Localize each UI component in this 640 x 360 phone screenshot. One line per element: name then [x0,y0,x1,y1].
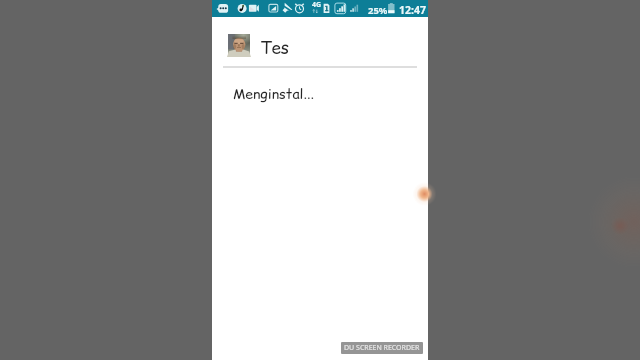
staticText: 4G [312,0,322,10]
button[interactable]: Profile photo [228,33,428,57]
staticText: DU SCREEN RECORDER [344,343,420,353]
staticText: Tes [260,36,290,60]
button[interactable]: Profile photo [228,34,250,56]
staticText: 25% [368,4,388,17]
staticText: 12:47 [399,3,426,17]
staticText: Menginstal... [233,84,314,104]
